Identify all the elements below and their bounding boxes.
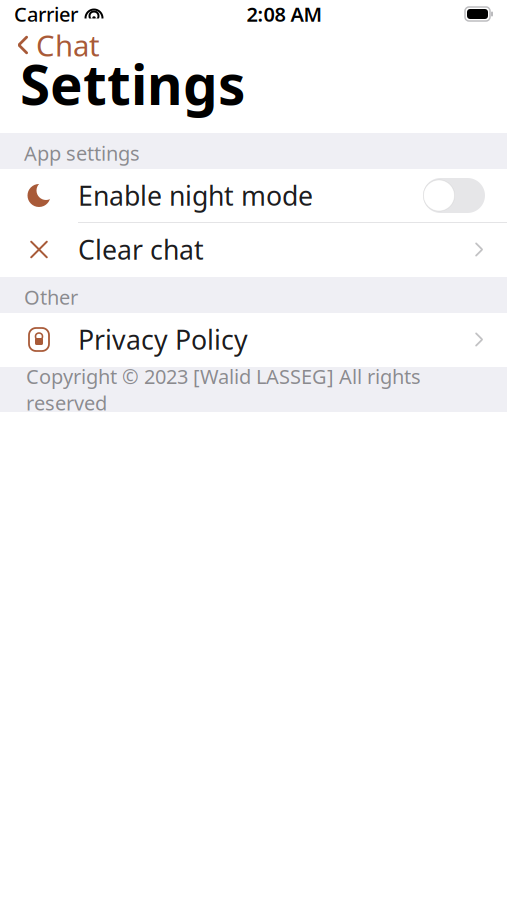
staticText: Chat xyxy=(36,25,100,64)
staticText: Enable night mode xyxy=(78,178,313,213)
staticText: Clear chat xyxy=(78,232,204,267)
button[interactable]: Enable night mode xyxy=(0,169,507,223)
button[interactable]: Privacy Policy xyxy=(0,313,507,367)
staticText: Settings xyxy=(20,47,245,120)
staticText: Copyright © 2023 [Walid LASSEG] All righ… xyxy=(26,363,421,416)
staticText: Other xyxy=(24,284,78,310)
staticText: Carrier xyxy=(14,1,78,27)
staticText: Privacy Policy xyxy=(78,322,248,357)
button[interactable]: Clear chat xyxy=(0,223,507,277)
button[interactable]: Chat xyxy=(0,21,100,68)
staticText: App settings xyxy=(24,140,140,166)
staticText: 2:08 AM xyxy=(246,1,322,27)
